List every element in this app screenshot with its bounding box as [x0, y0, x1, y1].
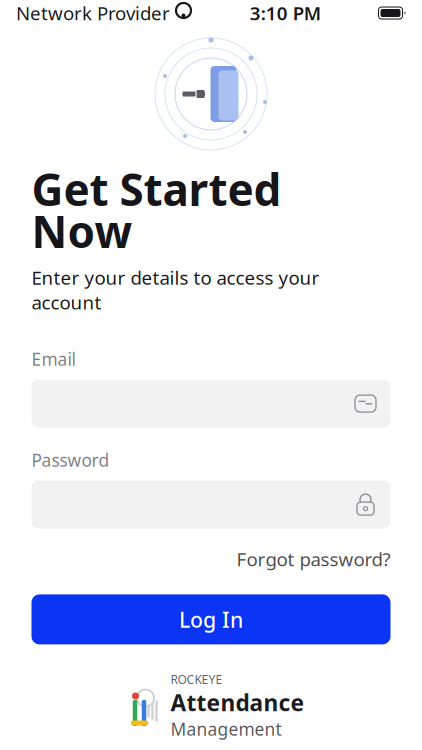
button[interactable]: Forgot password? — [236, 541, 390, 577]
staticText: Attendance — [170, 687, 304, 717]
staticText: Log In — [179, 605, 243, 633]
staticText: Now — [31, 202, 132, 260]
staticText: Network Provider — [16, 1, 170, 25]
staticText: Password — [31, 449, 109, 472]
staticText: Management — [170, 717, 281, 740]
staticText: Enter your details to access your accoun… — [31, 265, 319, 315]
staticText: Email — [31, 348, 75, 371]
button[interactable]: Log In — [31, 594, 390, 644]
staticText: 3:10 PM — [250, 1, 321, 25]
staticText: ROCKEYE — [170, 671, 222, 687]
staticText: Get Started — [31, 160, 281, 218]
staticText: Forgot password? — [236, 547, 390, 571]
